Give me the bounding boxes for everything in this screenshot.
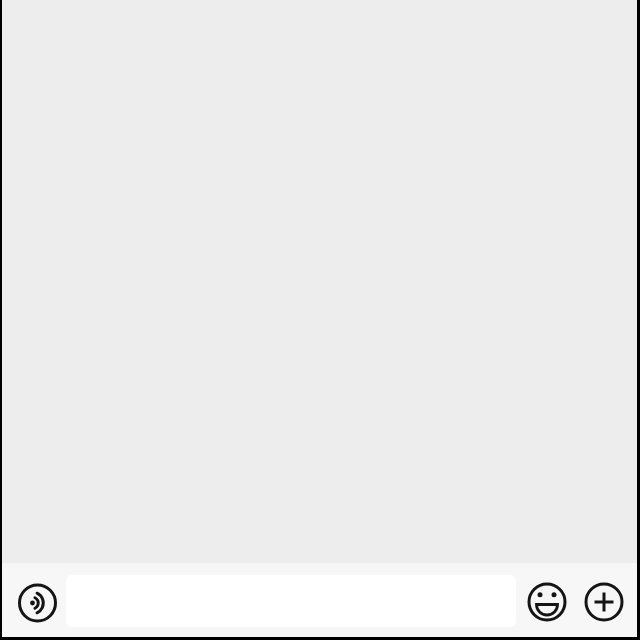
button[interactable] bbox=[523, 578, 571, 626]
button[interactable] bbox=[13, 579, 61, 627]
button[interactable] bbox=[580, 578, 628, 626]
